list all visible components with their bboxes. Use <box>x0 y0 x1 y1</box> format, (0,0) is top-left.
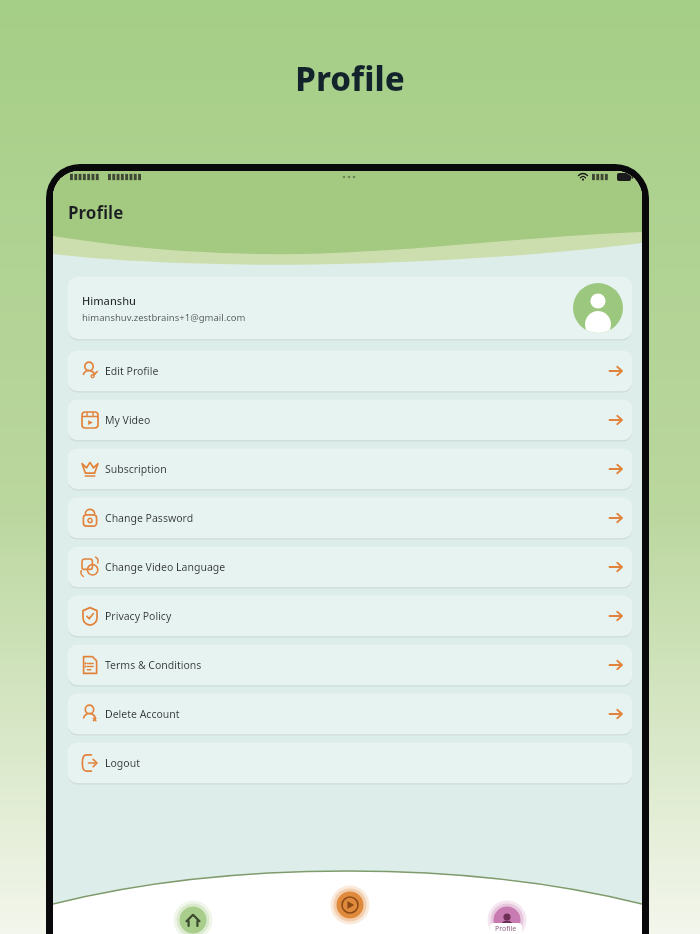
staticText: Profile <box>495 924 517 934</box>
staticText: Delete Account <box>105 707 180 721</box>
button[interactable]: Terms & Conditions <box>68 645 632 685</box>
button[interactable]: My Video <box>68 400 632 440</box>
staticText: Profile <box>295 56 405 101</box>
button[interactable]: Home <box>169 896 217 934</box>
staticText: Himanshu <box>82 293 136 308</box>
button[interactable]: Change Password <box>68 498 632 538</box>
staticText: Terms & Conditions <box>105 658 202 672</box>
button[interactable]: Delete Account <box>68 694 632 734</box>
button[interactable]: Privacy Policy <box>68 596 632 636</box>
button[interactable]: Subscription <box>68 449 632 489</box>
staticText: Profile <box>68 201 124 224</box>
staticText: Change Video Language <box>105 560 226 574</box>
button[interactable]: Play <box>326 881 374 929</box>
button[interactable]: Change Video Language <box>68 547 632 587</box>
staticText: Logout <box>105 756 140 770</box>
staticText: Edit Profile <box>105 364 159 378</box>
button[interactable]: Himanshu <box>68 277 632 339</box>
staticText: Privacy Policy <box>105 609 172 623</box>
button[interactable]: Logout <box>68 743 632 783</box>
staticText: Change Password <box>105 511 194 525</box>
button[interactable]: Profile <box>483 896 531 934</box>
staticText: himanshuv.zestbrains+1@gmail.com <box>82 311 246 324</box>
staticText: My Video <box>105 413 151 427</box>
staticText: Subscription <box>105 462 167 476</box>
button[interactable]: Edit Profile <box>68 351 632 391</box>
